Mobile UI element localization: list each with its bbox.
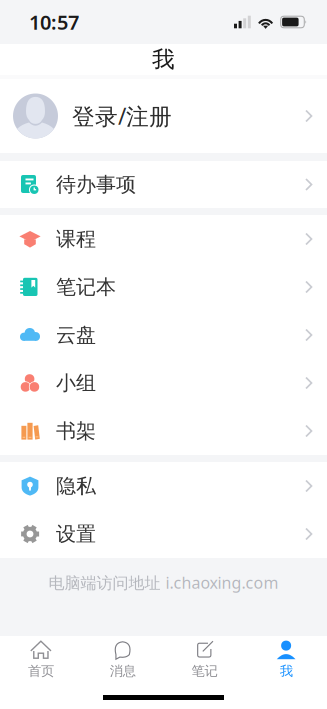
button[interactable]: 笔记本 xyxy=(0,263,327,311)
staticText: 笔记本 xyxy=(56,275,116,299)
button[interactable]: 书架 xyxy=(0,407,327,455)
button[interactable]: 我 xyxy=(245,636,327,683)
staticText: 我 xyxy=(152,46,175,73)
staticText: 设置 xyxy=(56,522,96,546)
button[interactable]: 消息 xyxy=(82,636,164,683)
staticText: 小组 xyxy=(56,371,96,395)
staticText: 登录/注册 xyxy=(72,101,172,131)
staticText: 隐私 xyxy=(56,474,96,498)
button[interactable]: 首页 xyxy=(0,636,82,683)
button[interactable]: 小组 xyxy=(0,359,327,407)
staticText: 首页 xyxy=(28,663,54,679)
button[interactable]: 课程 xyxy=(0,215,327,263)
staticText: 笔记 xyxy=(191,663,217,679)
staticText: 书架 xyxy=(56,419,96,443)
staticText: 10:57 xyxy=(29,9,79,35)
button[interactable]: 设置 xyxy=(0,510,327,558)
staticText: 电脑端访问地址 i.chaoxing.com xyxy=(48,572,278,593)
staticText: 待办事项 xyxy=(56,172,136,197)
staticText: 云盘 xyxy=(56,323,96,347)
button[interactable]: 登录/注册 xyxy=(0,79,327,153)
staticText: 消息 xyxy=(110,663,136,679)
staticText: 我 xyxy=(280,663,293,679)
button[interactable]: 笔记 xyxy=(163,636,245,683)
staticText: 课程 xyxy=(56,227,96,251)
button[interactable]: 待办事项 xyxy=(0,161,327,208)
button[interactable]: 隐私 xyxy=(0,462,327,510)
button[interactable]: 云盘 xyxy=(0,311,327,359)
